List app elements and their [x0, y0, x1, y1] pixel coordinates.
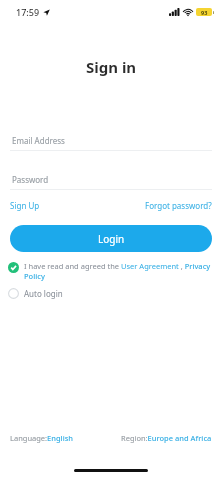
staticText: Password	[12, 174, 49, 185]
button[interactable]: Email Address	[10, 132, 212, 148]
staticText: Login	[98, 232, 125, 246]
button[interactable]: Sign Up	[10, 198, 40, 213]
staticText: I have read and agreed the User Agreemen…	[24, 261, 212, 281]
staticText: Email Address	[12, 135, 65, 146]
button[interactable]: Language:English	[10, 430, 74, 446]
staticText: Forgot password?	[145, 200, 212, 211]
staticText: Sign in	[86, 57, 137, 77]
staticText: 17:59	[16, 6, 40, 18]
staticText: 93	[201, 9, 208, 16]
staticText: Sign Up	[10, 200, 40, 211]
button[interactable]: Forgot password?	[145, 198, 212, 213]
staticText: Region:Europe and Africa	[121, 433, 212, 443]
staticText: Language:English	[10, 433, 74, 443]
staticText: Auto login	[24, 288, 63, 299]
other: Agreement checked	[8, 262, 19, 273]
button[interactable]: Region:Europe and Africa	[121, 430, 212, 446]
button[interactable]: Password	[10, 171, 212, 187]
button[interactable]: Agreement checked	[8, 261, 212, 281]
other: Auto login unchecked	[8, 288, 19, 299]
button[interactable]: Auto login unchecked	[8, 288, 222, 299]
button[interactable]: Login	[10, 225, 212, 252]
